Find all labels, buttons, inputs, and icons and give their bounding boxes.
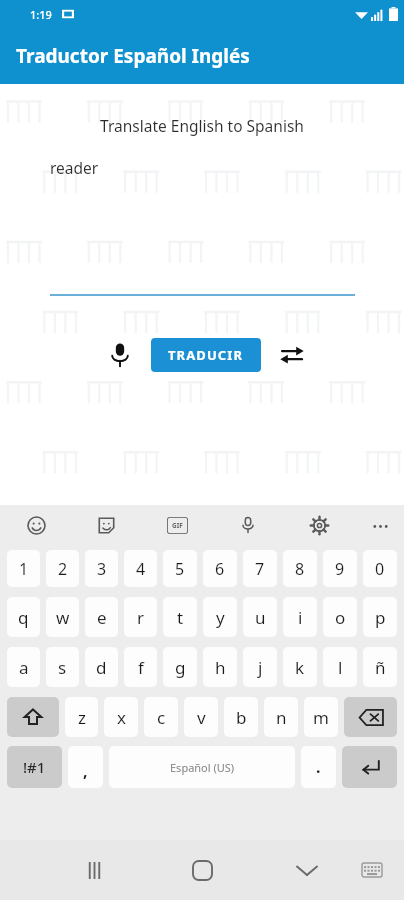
staticText: y xyxy=(216,606,225,629)
staticText: l xyxy=(338,656,343,679)
button[interactable]: 6 xyxy=(203,550,237,587)
button[interactable]: 5 xyxy=(163,550,197,587)
button[interactable]: s xyxy=(46,647,79,687)
button[interactable]: Keyboard option xyxy=(230,507,266,543)
staticText: . xyxy=(316,756,321,778)
staticText: TRADUCIR xyxy=(168,346,244,364)
button[interactable]: r xyxy=(124,597,157,637)
button[interactable]: p xyxy=(363,597,397,637)
staticText: 2 xyxy=(58,558,68,580)
staticText: Traductor Español Inglés xyxy=(16,43,250,69)
staticText: o xyxy=(335,606,346,629)
button[interactable]: j xyxy=(243,647,277,687)
staticText: 0 xyxy=(375,558,385,580)
staticText: Translate English to Spanish xyxy=(0,115,404,136)
staticText: h xyxy=(215,656,226,679)
staticText: 5 xyxy=(175,558,185,580)
button[interactable]: Keyboard option xyxy=(362,507,398,543)
button[interactable]: k xyxy=(283,647,317,687)
button[interactable]: Change keyboard xyxy=(352,850,392,890)
button[interactable]: g xyxy=(163,647,197,687)
staticText: n xyxy=(276,706,287,729)
button[interactable]: c xyxy=(144,697,178,737)
button[interactable]: e xyxy=(85,597,118,637)
button[interactable]: v xyxy=(184,697,218,737)
staticText: Español (US) xyxy=(170,760,235,775)
staticText: a xyxy=(19,656,29,679)
button[interactable]: Backspace xyxy=(344,697,397,737)
staticText: p xyxy=(375,606,386,629)
button[interactable]: , xyxy=(68,746,103,788)
button[interactable]: 9 xyxy=(323,550,357,587)
staticText: s xyxy=(58,656,67,679)
button[interactable]: b xyxy=(224,697,258,737)
staticText: e xyxy=(97,606,107,629)
button[interactable]: t xyxy=(163,597,197,637)
button[interactable]: Keyboard option xyxy=(18,507,54,543)
button[interactable]: w xyxy=(46,597,79,637)
button[interactable]: m xyxy=(304,697,338,737)
button[interactable]: Recents xyxy=(72,848,116,892)
button[interactable]: z xyxy=(65,697,98,737)
button[interactable]: Español (US) xyxy=(109,746,295,788)
staticText: d xyxy=(96,656,107,679)
button[interactable]: f xyxy=(124,647,157,687)
staticText: 7 xyxy=(255,558,265,580)
button[interactable]: Keyboard option xyxy=(159,507,195,543)
staticText: j xyxy=(258,656,263,679)
button[interactable]: x xyxy=(104,697,138,737)
staticText: 1:19 xyxy=(30,7,52,22)
button[interactable]: d xyxy=(85,647,118,687)
button[interactable]: 1 xyxy=(7,550,40,587)
staticText: t xyxy=(177,606,184,629)
staticText: 1 xyxy=(19,558,29,580)
button[interactable]: ñ xyxy=(363,647,397,687)
staticText: f xyxy=(138,656,144,679)
button[interactable]: TRADUCIR xyxy=(151,338,261,372)
button[interactable]: l xyxy=(323,647,357,687)
button[interactable]: 2 xyxy=(46,550,79,587)
staticText: g xyxy=(175,656,186,679)
button[interactable]: Traductor Español Inglés xyxy=(0,28,404,84)
staticText: x xyxy=(117,706,126,729)
button[interactable]: Shift xyxy=(7,697,59,737)
button[interactable]: i xyxy=(283,597,317,637)
button[interactable]: Hide keyboard xyxy=(285,848,329,892)
button[interactable]: Keyboard option xyxy=(301,507,337,543)
staticText: v xyxy=(197,706,206,729)
button[interactable]: Keyboard option xyxy=(88,507,124,543)
staticText: u xyxy=(255,606,266,629)
button[interactable]: 7 xyxy=(243,550,277,587)
staticText: c xyxy=(157,706,166,729)
button[interactable]: n xyxy=(264,697,298,737)
button[interactable]: h xyxy=(203,647,237,687)
staticText: w xyxy=(56,606,70,629)
staticText: 3 xyxy=(97,558,107,580)
button[interactable]: y xyxy=(203,597,237,637)
staticText: k xyxy=(295,656,305,679)
button[interactable]: u xyxy=(243,597,277,637)
button[interactable]: a xyxy=(7,647,40,687)
button[interactable]: Voice input xyxy=(101,336,139,374)
button[interactable]: . xyxy=(301,746,336,788)
button[interactable]: 4 xyxy=(124,550,157,587)
staticText: , xyxy=(83,760,88,782)
button[interactable]: 0 xyxy=(363,550,397,587)
staticText: 6 xyxy=(215,558,225,580)
staticText: b xyxy=(236,706,247,729)
button[interactable]: Swap languages xyxy=(273,336,311,374)
staticText: 9 xyxy=(335,558,345,580)
staticText: ñ xyxy=(375,656,386,679)
button[interactable]: 3 xyxy=(85,550,118,587)
button[interactable]: Enter xyxy=(342,746,397,788)
button[interactable]: q xyxy=(7,597,40,637)
staticText: !#1 xyxy=(23,757,46,777)
staticText: GIF xyxy=(172,521,183,530)
button[interactable]: 8 xyxy=(283,550,317,587)
button[interactable]: !#1 xyxy=(7,746,62,788)
staticText: q xyxy=(18,606,29,629)
staticText: i xyxy=(298,606,303,629)
button[interactable]: Home xyxy=(180,848,224,892)
staticText: m xyxy=(313,706,329,729)
button[interactable]: o xyxy=(323,597,357,637)
